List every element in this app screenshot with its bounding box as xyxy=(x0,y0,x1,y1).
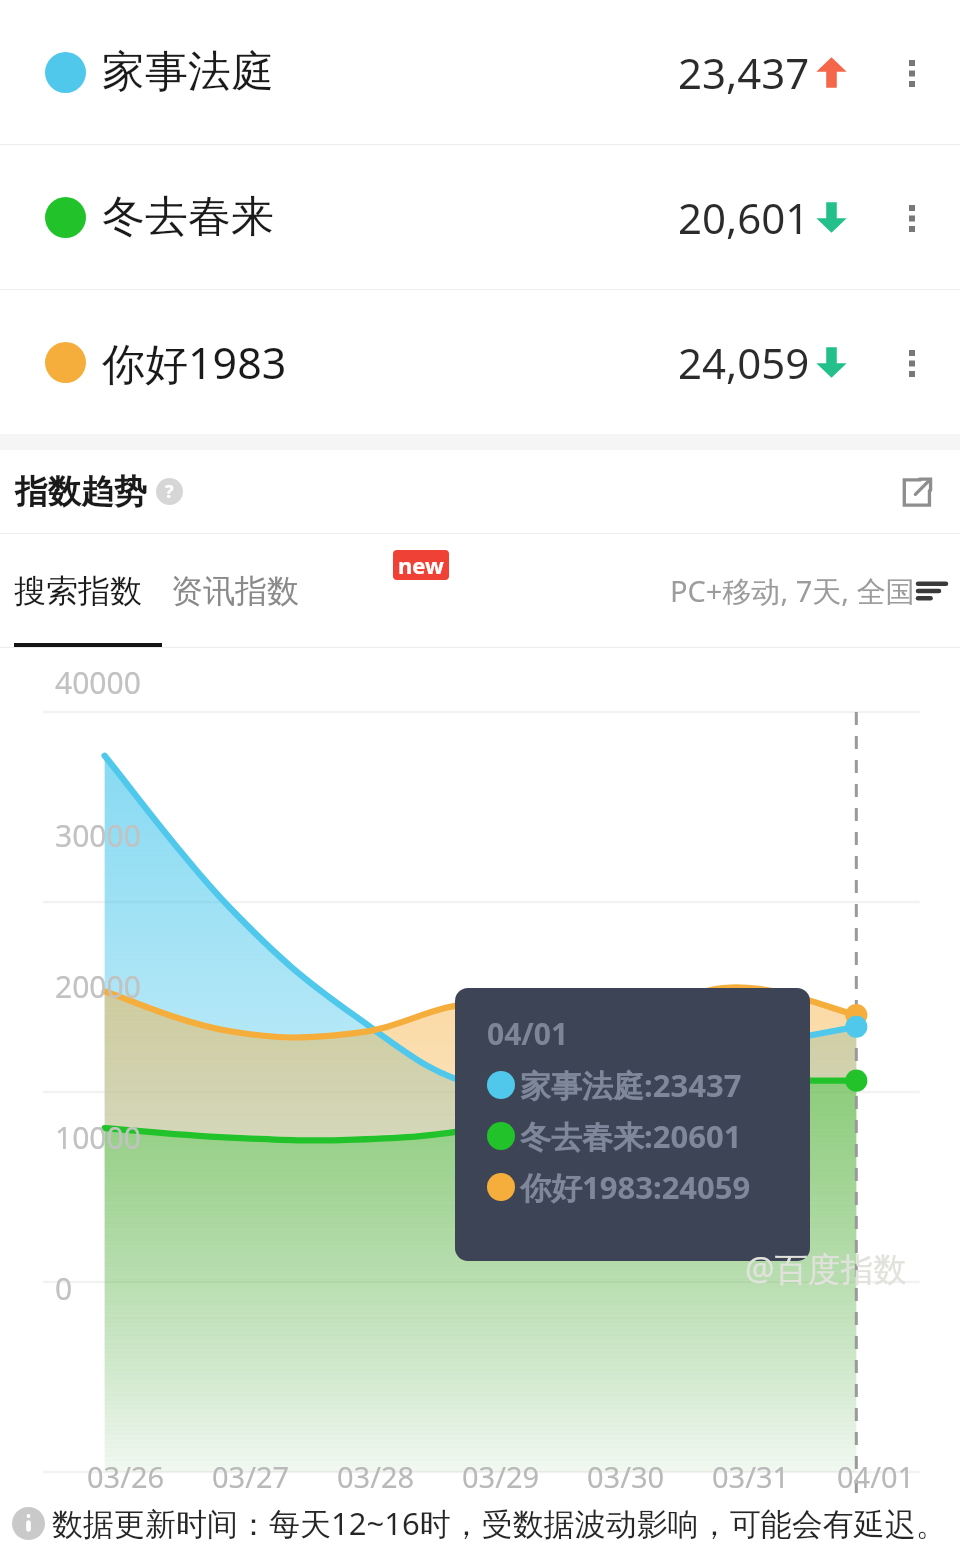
staticText: 30000 xyxy=(55,815,141,856)
staticText: 20,601 xyxy=(678,189,810,246)
button[interactable]: 你好1983 xyxy=(0,290,960,434)
staticText: 10000 xyxy=(55,1117,141,1158)
staticText: 20000 xyxy=(55,966,141,1007)
staticText: @百度指数 xyxy=(745,1246,907,1291)
staticText: 03/26 xyxy=(87,1457,165,1496)
staticText: 冬去春来 xyxy=(102,190,274,244)
staticText: PC+移动, 7天, 全国 xyxy=(670,571,915,611)
staticText: 03/31 xyxy=(712,1457,790,1496)
staticText: 40000 xyxy=(55,662,141,703)
staticText: 家事法庭:23437 xyxy=(520,1064,742,1106)
staticText: 04/01 xyxy=(487,1013,569,1054)
button[interactable]: 指数趋势 xyxy=(0,450,960,533)
staticText: ? xyxy=(165,479,174,504)
staticText: 家事法庭 xyxy=(102,45,274,99)
button[interactable]: 资讯指数 xyxy=(171,571,299,611)
staticText: 数据更新时间：每天12~16时，受数据波动影响，可能会有延迟。 xyxy=(52,1502,947,1544)
staticText: 你好1983:24059 xyxy=(520,1166,751,1208)
staticText: 你好1983 xyxy=(102,333,287,392)
staticText: 03/27 xyxy=(212,1457,290,1496)
button[interactable]: 搜索指数 xyxy=(14,571,142,611)
button[interactable]: 冬去春来 xyxy=(0,145,960,289)
staticText: 指数趋势 xyxy=(15,471,147,513)
button[interactable]: More options xyxy=(884,189,940,245)
staticText: 搜索指数 xyxy=(14,571,142,611)
staticText: 04/01 xyxy=(837,1457,915,1496)
staticText: 03/28 xyxy=(337,1457,415,1496)
staticText: 0 xyxy=(55,1268,73,1309)
staticText: 03/29 xyxy=(462,1457,540,1496)
staticText: new xyxy=(398,550,444,580)
button[interactable]: PC+移动, 7天, 全国 xyxy=(670,571,946,611)
button[interactable]: Open in new window xyxy=(886,462,946,522)
staticText: 03/30 xyxy=(587,1457,665,1496)
staticText: 24,059 xyxy=(678,334,810,391)
staticText: 资讯指数 xyxy=(171,571,299,611)
button[interactable]: More options xyxy=(884,44,940,100)
staticText: 23,437 xyxy=(678,44,810,101)
staticText: 冬去春来:20601 xyxy=(520,1115,742,1157)
button[interactable]: 家事法庭 xyxy=(0,0,960,144)
button[interactable]: More options xyxy=(884,334,940,390)
